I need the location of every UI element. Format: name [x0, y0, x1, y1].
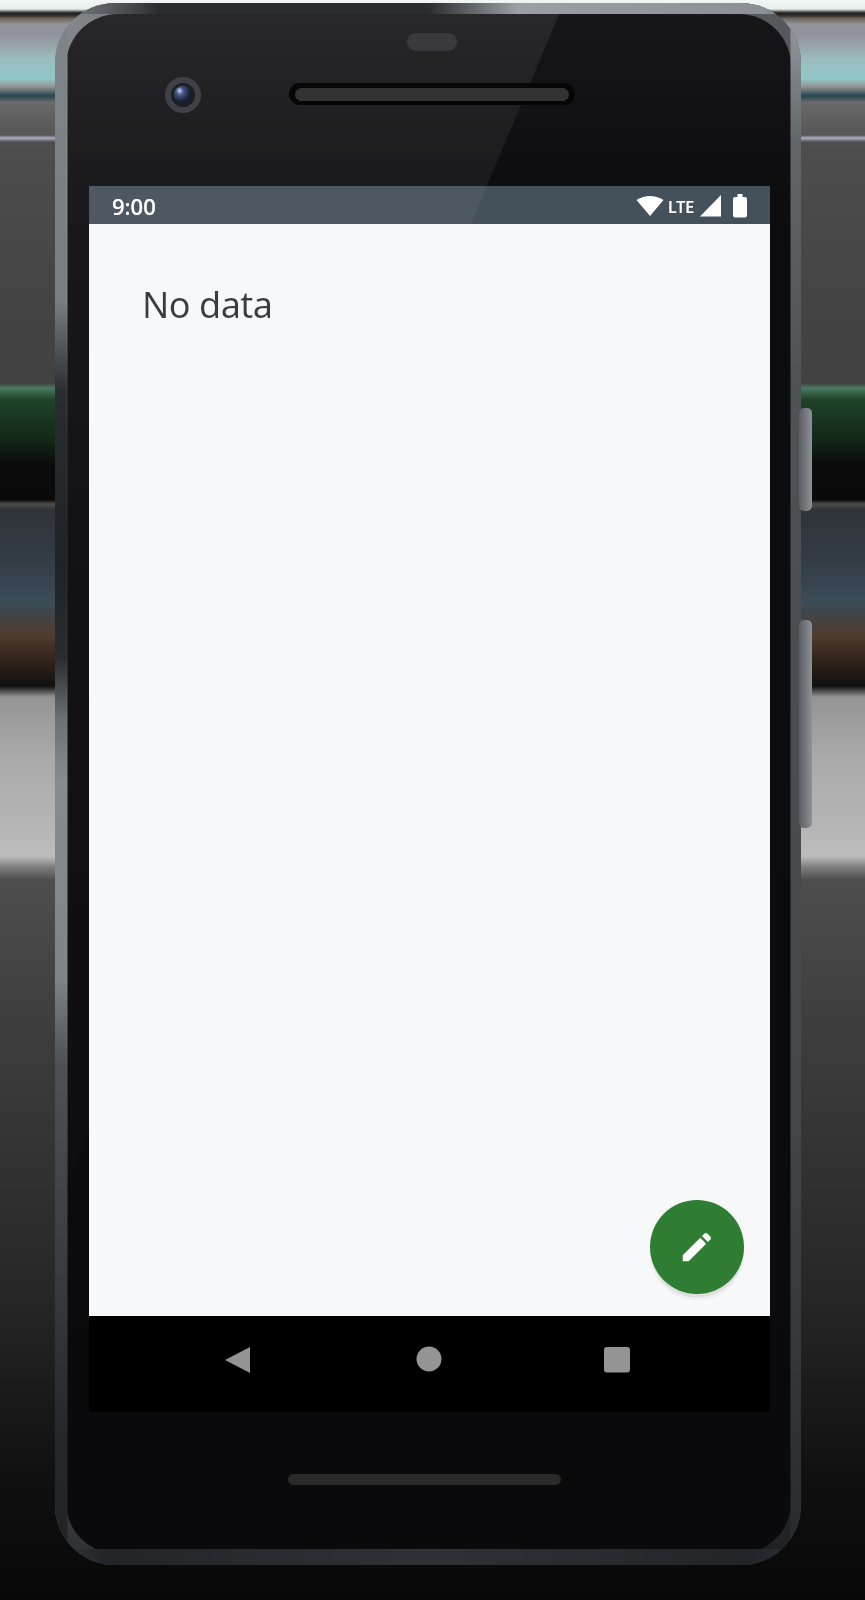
button[interactable]	[595, 1337, 639, 1381]
staticText: 9:00	[112, 191, 156, 221]
button[interactable]	[213, 1338, 257, 1382]
staticText: No data	[142, 280, 273, 329]
staticText: LTE	[668, 196, 695, 218]
button[interactable]	[650, 1200, 744, 1294]
button[interactable]	[407, 1337, 451, 1381]
